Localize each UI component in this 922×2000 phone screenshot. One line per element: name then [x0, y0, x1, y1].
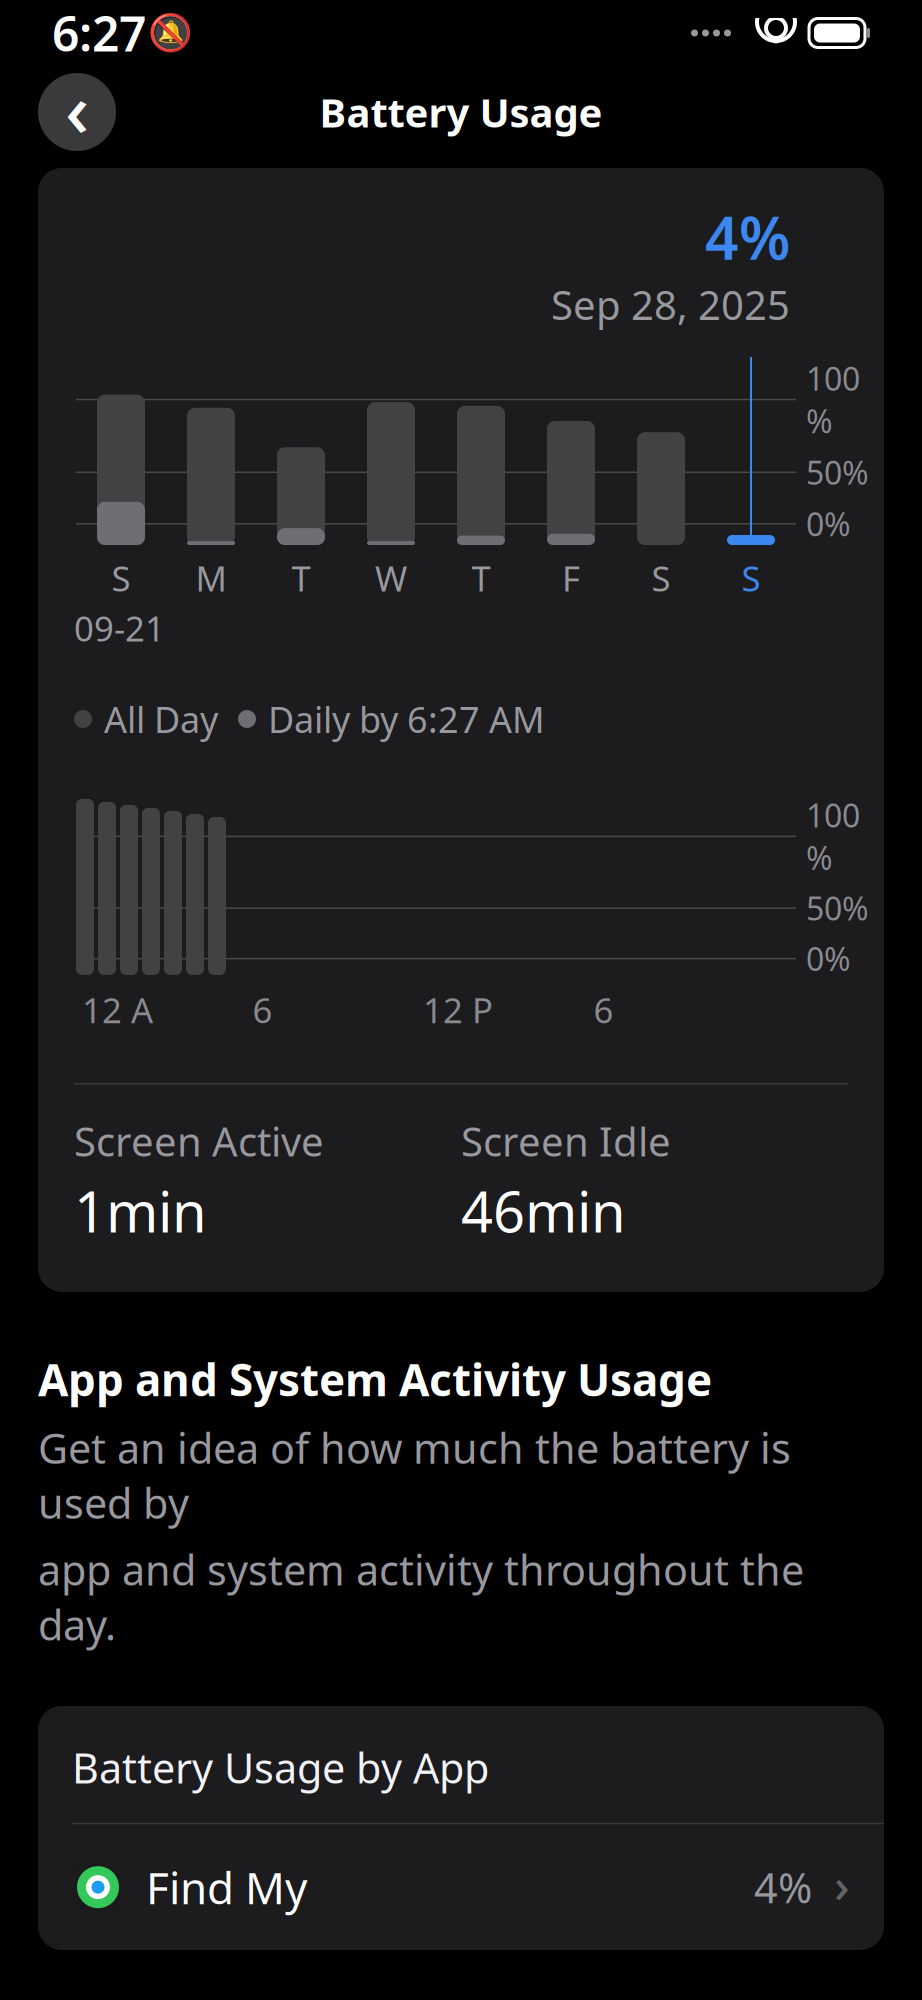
staticText: 6:27 — [52, 1, 146, 65]
staticText: 6 — [252, 987, 272, 1033]
button[interactable]: Back — [38, 73, 116, 151]
staticText: › — [834, 1852, 850, 1916]
staticText: 6 — [593, 987, 613, 1033]
staticText: Get an idea of how much the battery is u… — [38, 1420, 791, 1530]
staticText: app and system activity throughout the d… — [38, 1542, 804, 1652]
staticText: M — [195, 555, 226, 601]
staticText: App and System Activity Usage — [38, 1350, 712, 1408]
staticText: 12 P — [423, 987, 493, 1033]
staticText: 1min — [74, 1174, 207, 1248]
staticText: Sep 28, 2025 — [551, 278, 790, 331]
staticText: 46min — [461, 1174, 626, 1248]
staticText: Find My — [146, 1858, 307, 1916]
staticText: ‹ — [65, 58, 89, 158]
staticText: T — [471, 555, 490, 601]
staticText: 🔕 — [147, 12, 192, 53]
button[interactable]: Find My — [38, 1824, 884, 1950]
staticText: T — [291, 555, 310, 601]
staticText: 4% — [705, 198, 790, 276]
staticText: 0% — [806, 502, 851, 545]
staticText: Screen Active — [74, 1114, 324, 1167]
staticText: 12 A — [82, 987, 153, 1033]
staticText: S — [741, 555, 760, 601]
staticText: S — [111, 555, 130, 601]
staticText: F — [562, 555, 580, 601]
staticText: Battery Usage — [319, 85, 602, 138]
staticText: 4% — [754, 1860, 812, 1915]
staticText: Battery Usage by App — [72, 1740, 489, 1795]
staticText: 100% — [806, 357, 860, 442]
staticText: Screen Idle — [461, 1114, 671, 1167]
staticText: 100% — [806, 794, 860, 879]
staticText: Daily by 6:27 AM — [268, 695, 545, 743]
staticText: W — [375, 555, 407, 601]
staticText: 50% — [806, 451, 869, 493]
staticText: 50% — [806, 887, 869, 929]
staticText: 0% — [806, 937, 851, 980]
staticText: 09-21 — [74, 605, 165, 651]
staticText: S — [651, 555, 670, 601]
staticText: All Day — [104, 695, 218, 743]
